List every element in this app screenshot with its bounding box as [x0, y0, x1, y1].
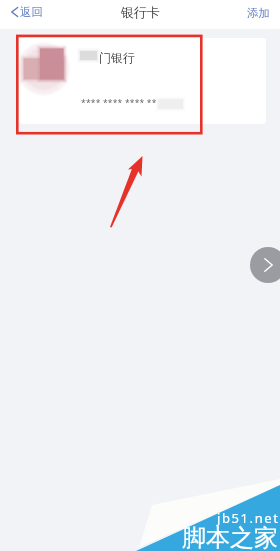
button[interactable] — [19, 38, 266, 124]
staticText: **** **** **** ** — [81, 97, 157, 109]
staticText: 返回 — [20, 5, 43, 19]
button[interactable]: 添加 — [247, 6, 270, 20]
staticText: jb51.net — [217, 509, 280, 527]
staticText: 脚本之家 — [182, 523, 278, 551]
button[interactable]: 返回 — [11, 5, 43, 19]
staticText: 门银行 — [99, 50, 135, 65]
staticText: 银行卡 — [121, 4, 160, 20]
button[interactable]: Next — [250, 247, 280, 283]
